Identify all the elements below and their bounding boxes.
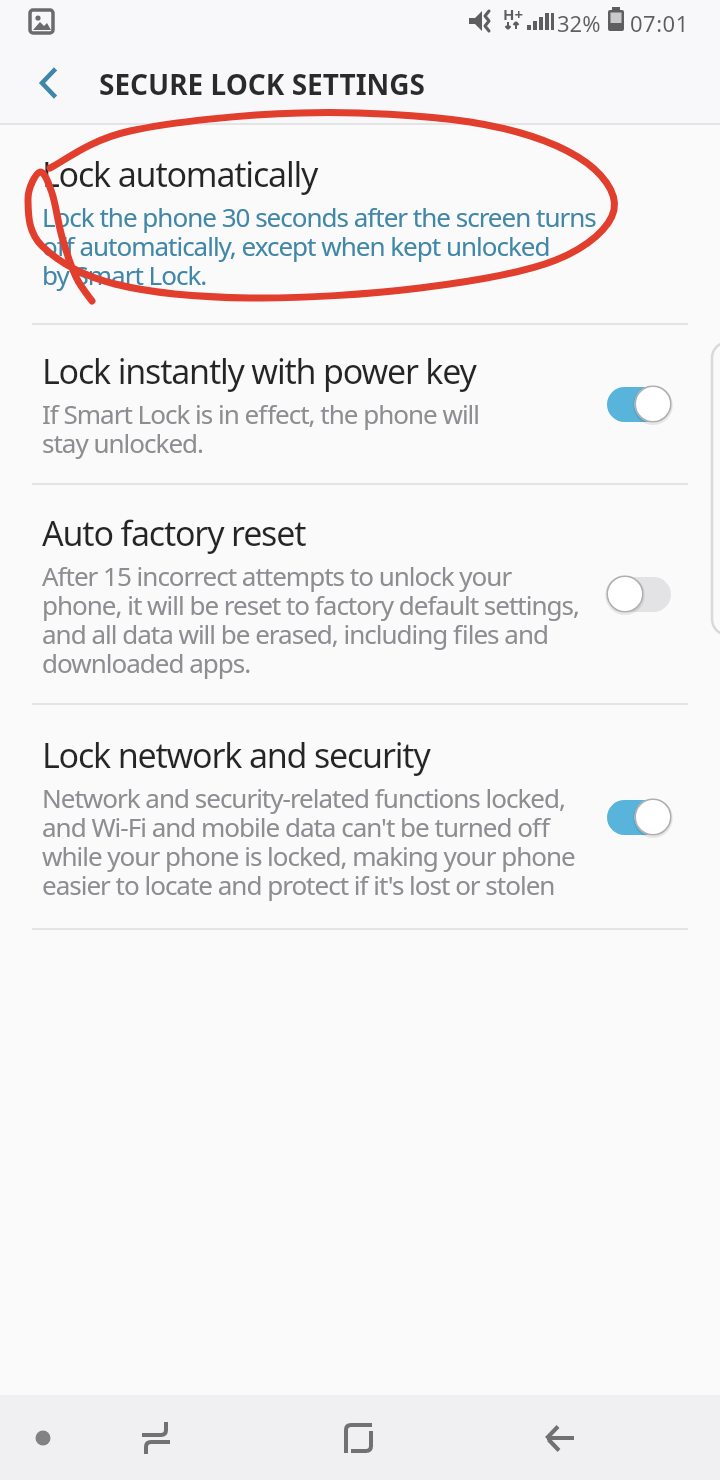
button[interactable] bbox=[515, 1395, 605, 1480]
button[interactable]: Lock network and security bbox=[0, 705, 720, 928]
button[interactable] bbox=[0, 45, 80, 123]
staticText: H+ bbox=[503, 4, 524, 24]
staticText: Auto factory reset bbox=[42, 510, 306, 556]
button[interactable] bbox=[3, 1395, 83, 1480]
button[interactable] bbox=[313, 1395, 403, 1480]
button[interactable] bbox=[606, 797, 672, 837]
button[interactable] bbox=[111, 1395, 201, 1480]
staticText: SECURE LOCK SETTINGS bbox=[99, 65, 426, 103]
staticText: Lock the phone 30 seconds after the scre… bbox=[42, 199, 596, 292]
button[interactable]: Auto factory reset bbox=[0, 485, 720, 703]
button[interactable]: Lock instantly with power key bbox=[0, 325, 720, 483]
staticText: Network and security-related functions l… bbox=[42, 780, 575, 902]
staticText: If Smart Lock is in effect, the phone wi… bbox=[42, 396, 480, 460]
staticText: Lock automatically bbox=[42, 151, 318, 197]
staticText: 07:01 bbox=[630, 8, 689, 38]
button[interactable]: Lock automatically bbox=[0, 125, 720, 323]
staticText: Lock instantly with power key bbox=[42, 348, 476, 394]
button[interactable] bbox=[606, 384, 672, 424]
staticText: After 15 incorrect attempts to unlock yo… bbox=[42, 558, 579, 680]
staticText: Lock network and security bbox=[42, 732, 430, 778]
staticText: 32% bbox=[557, 8, 601, 38]
button[interactable] bbox=[606, 574, 672, 614]
